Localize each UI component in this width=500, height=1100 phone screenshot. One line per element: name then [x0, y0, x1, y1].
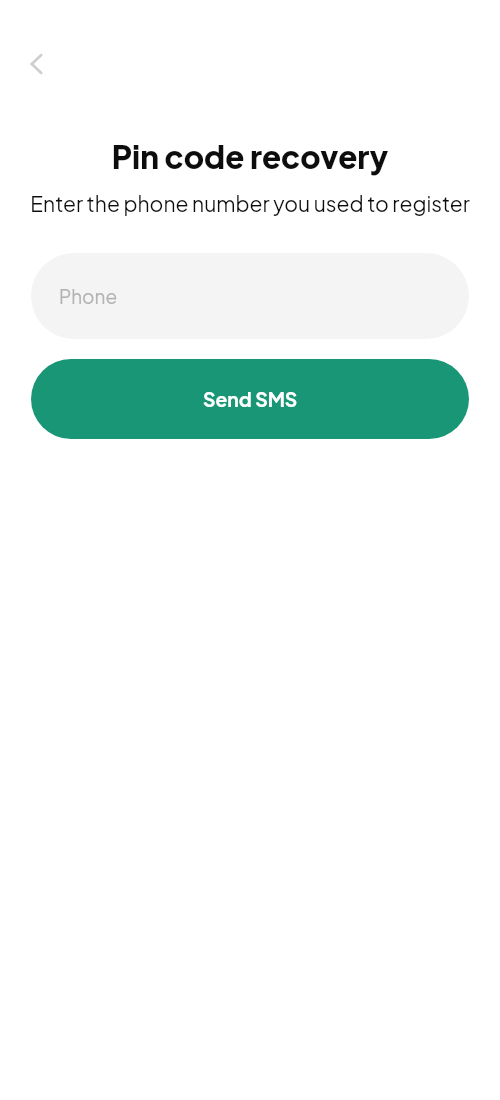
staticText: Send SMS — [203, 387, 298, 411]
button[interactable]: Phone — [31, 253, 469, 339]
staticText: Phone — [59, 284, 118, 308]
staticText: Pin code recovery — [0, 137, 500, 176]
button[interactable]: Send SMS — [31, 359, 469, 439]
staticText: Enter the phone number you used to regis… — [0, 190, 500, 217]
button[interactable]: Back — [14, 42, 58, 86]
